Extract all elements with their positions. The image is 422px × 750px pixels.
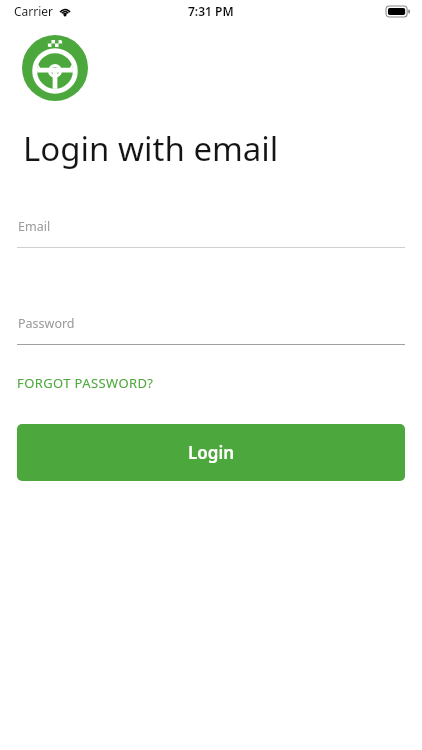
staticText: Carrier: [14, 3, 54, 19]
staticText: Login with email: [23, 126, 279, 171]
staticText: 7:31 PM: [188, 3, 234, 19]
button[interactable]: Password: [0, 315, 422, 345]
button[interactable]: Email: [0, 218, 422, 248]
button[interactable]: Login: [17, 424, 405, 481]
button[interactable]: FORGOT PASSWORD?: [17, 369, 154, 397]
other: App logo: [22, 35, 88, 101]
staticText: Password: [18, 315, 75, 332]
staticText: Login: [188, 441, 235, 464]
staticText: FORGOT PASSWORD?: [17, 374, 154, 392]
staticText: Email: [18, 218, 51, 235]
